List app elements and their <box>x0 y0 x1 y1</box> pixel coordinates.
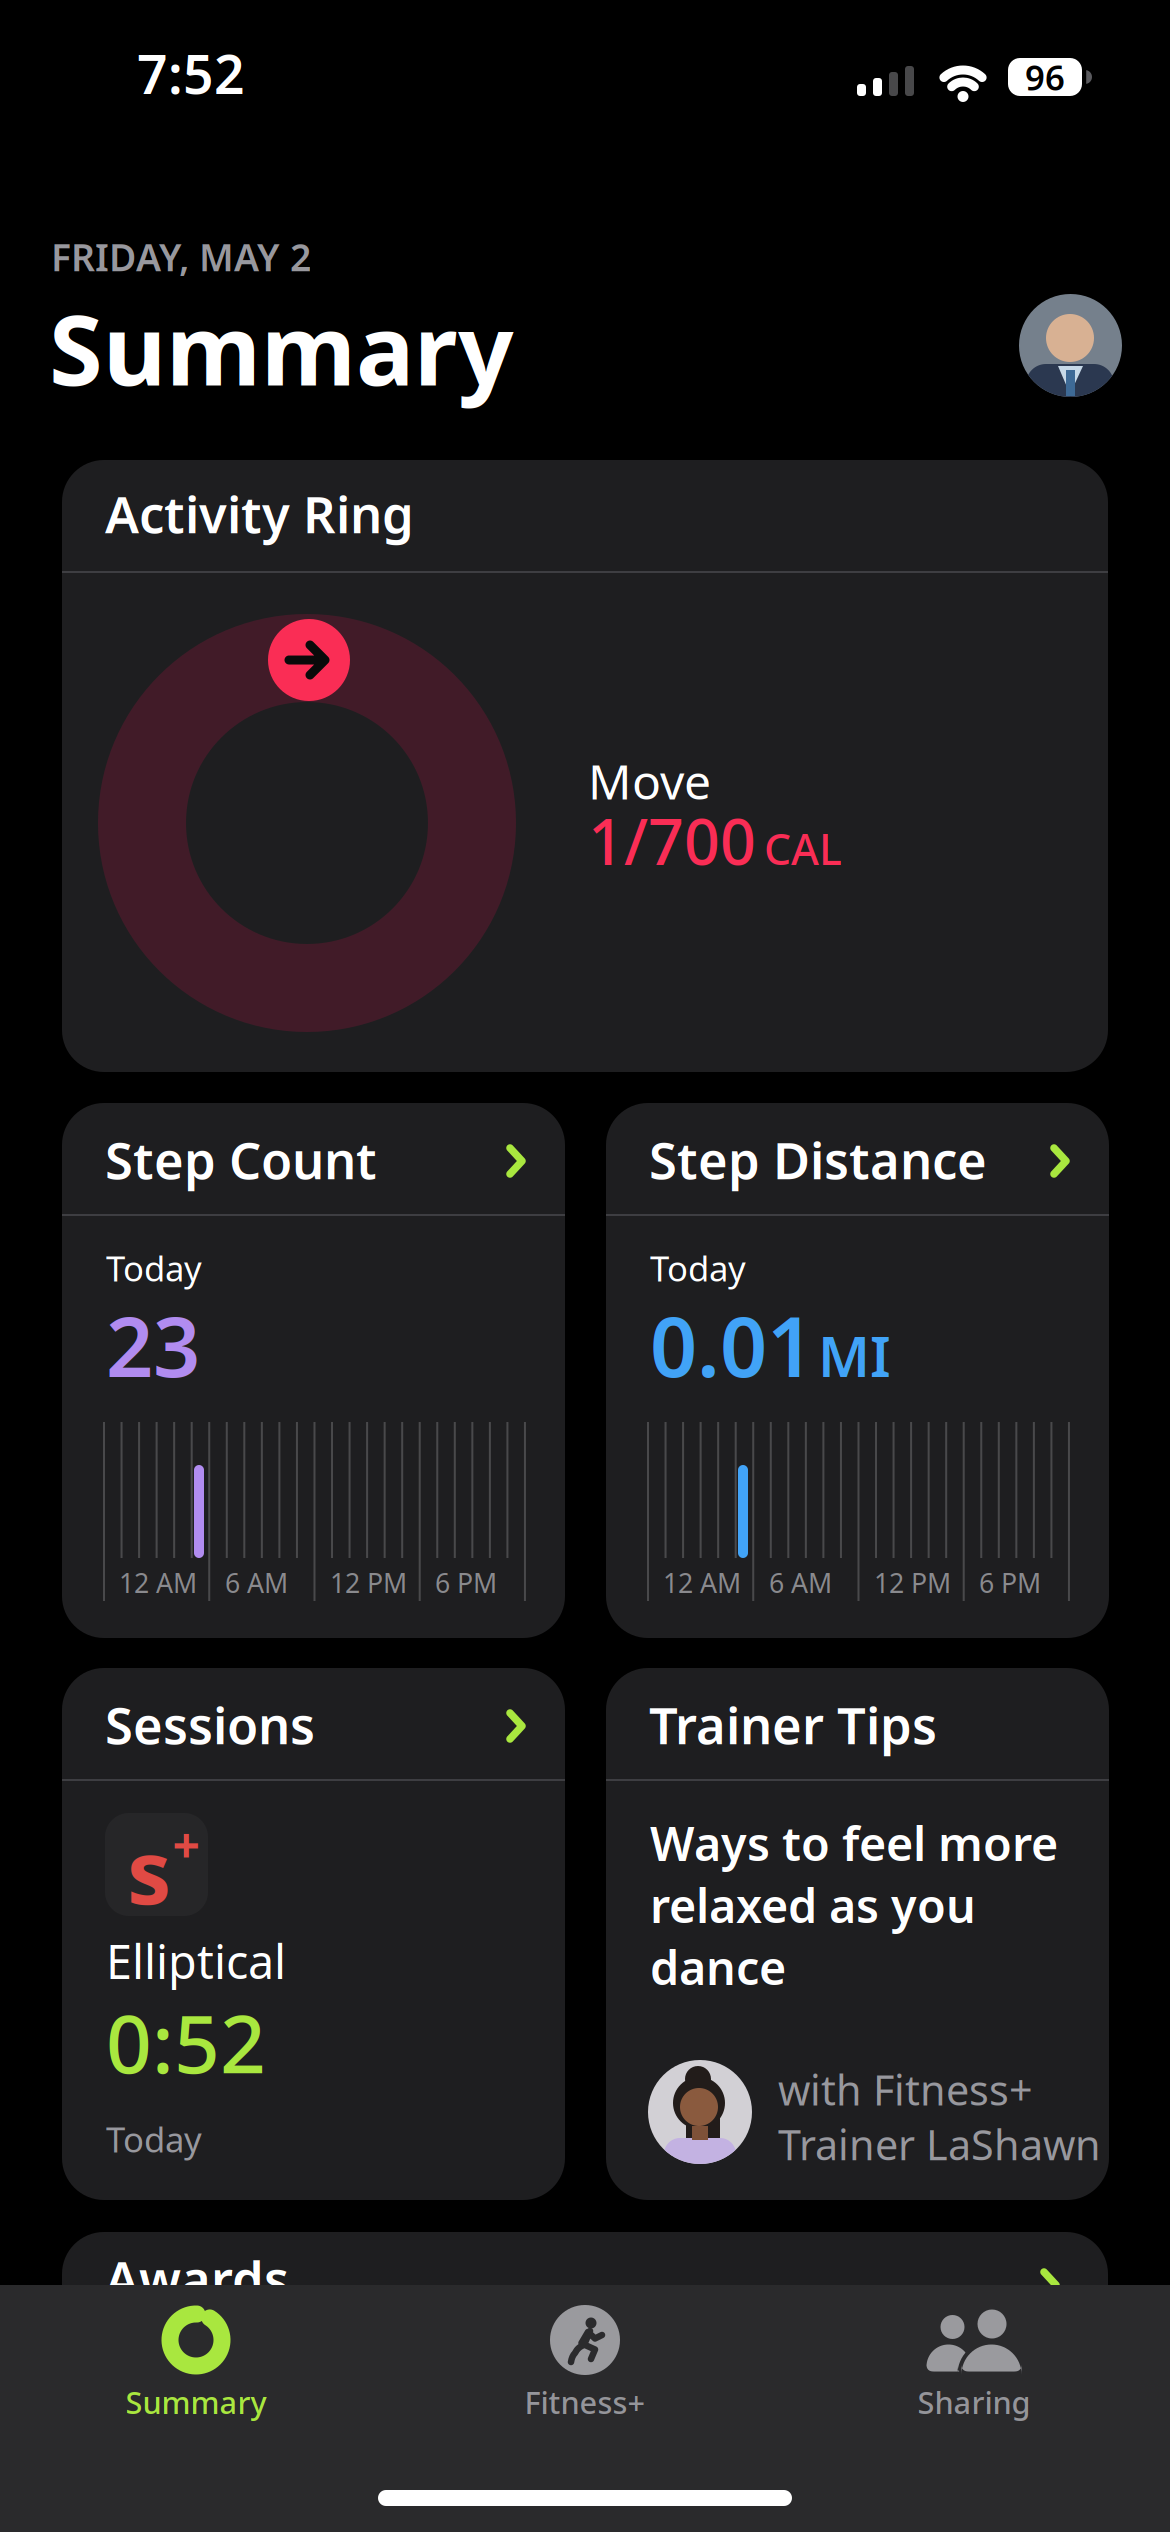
staticText: 1/700 <box>588 799 756 882</box>
button[interactable]: Summary <box>86 2285 306 2435</box>
staticText: Today <box>106 1245 202 1291</box>
staticText: Today <box>650 1245 746 1291</box>
staticText: Step Count <box>105 1126 377 1193</box>
staticText: 6 PM <box>979 1565 1041 1600</box>
staticText: CAL <box>764 820 842 877</box>
staticText: Elliptical <box>106 1930 286 1992</box>
staticText: Move <box>588 749 711 813</box>
button[interactable]: Activity Ring <box>62 460 1108 1072</box>
staticText: with Fitness+ Trainer LaShawn <box>778 2062 1101 2172</box>
staticText: Sharing <box>917 2382 1030 2422</box>
staticText: 96 <box>1025 54 1065 100</box>
staticText: 0.01 <box>650 1290 814 1400</box>
staticText: s <box>127 1812 171 1928</box>
button[interactable]: Awards <box>62 2232 1108 2362</box>
button[interactable]: Sharing <box>864 2285 1084 2435</box>
staticText: 23 <box>106 1290 200 1400</box>
staticText: 12 PM <box>330 1565 407 1600</box>
staticText: + <box>172 1812 199 1876</box>
button[interactable]: Step Count <box>62 1103 565 1638</box>
staticText: 12 AM <box>119 1565 197 1600</box>
staticText: 12 AM <box>663 1565 741 1600</box>
staticText: 6 AM <box>225 1565 288 1600</box>
staticText: Fitness+ <box>524 2382 645 2422</box>
staticText: FRIDAY, MAY 2 <box>51 232 311 282</box>
staticText: Sessions <box>105 1691 315 1758</box>
staticText: 12 PM <box>874 1565 951 1600</box>
staticText: 6 AM <box>769 1565 832 1600</box>
staticText: Trainer Tips <box>649 1691 937 1758</box>
button[interactable]: Trainer Tips <box>606 1668 1109 2200</box>
staticText: 0:52 <box>106 1989 266 2095</box>
staticText: MI <box>818 1318 891 1392</box>
staticText: Today <box>106 2116 202 2162</box>
button[interactable]: Fitness+ <box>475 2285 695 2435</box>
staticText: 7:52 <box>137 38 245 109</box>
staticText: Activity Ring <box>105 480 414 547</box>
button[interactable]: Sessions <box>62 1668 565 2200</box>
staticText: Step Distance <box>649 1126 987 1193</box>
staticText: Summary <box>49 283 514 412</box>
staticText: Summary <box>125 2382 266 2422</box>
staticText: Awards <box>105 2245 289 2312</box>
staticText: 6 PM <box>435 1565 497 1600</box>
button[interactable]: Step Distance <box>606 1103 1109 1638</box>
button[interactable]: Profile <box>1019 294 1122 397</box>
staticText: Ways to feel more relaxed as you dance <box>650 1812 1058 1998</box>
